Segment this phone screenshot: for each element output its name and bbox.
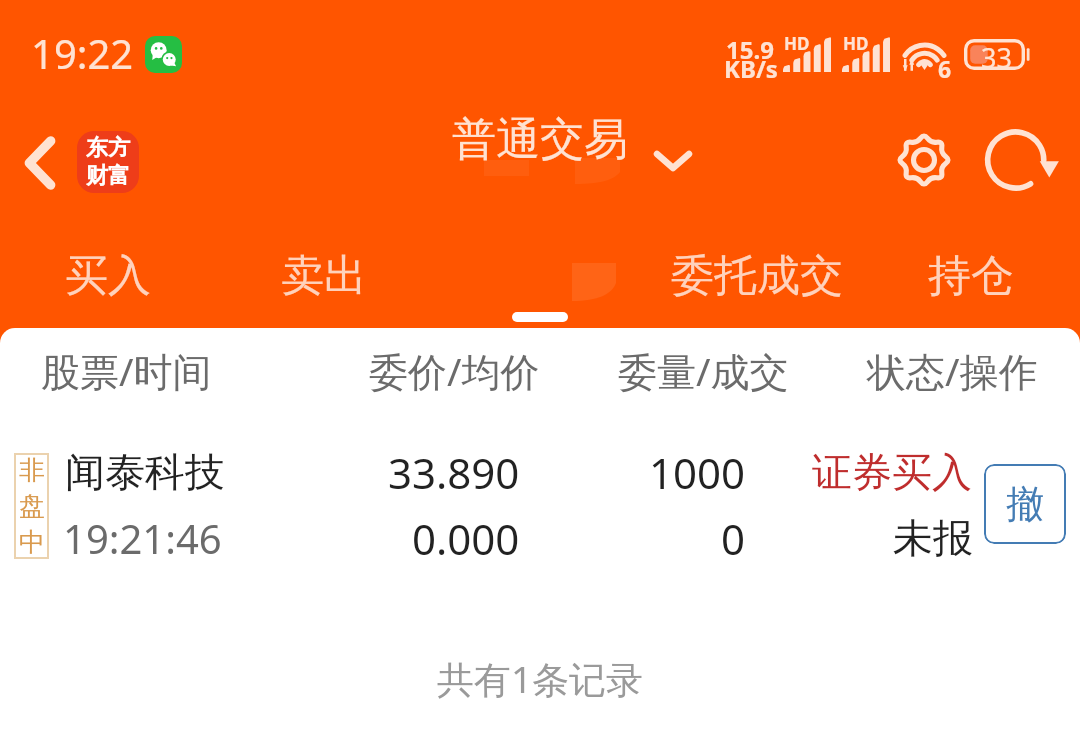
button[interactable]: Back <box>4 127 76 199</box>
staticText: 股票/时间 <box>41 344 212 397</box>
button[interactable]: 卖出 <box>264 238 384 314</box>
button[interactable]: 持仓 <box>911 238 1031 314</box>
staticText: 15.9 <box>726 33 774 66</box>
staticText: 闻泰科技 <box>65 447 225 497</box>
staticText: 33 <box>981 39 1012 70</box>
staticText: 委托成交 <box>671 249 843 303</box>
staticText: 19:22 <box>31 26 134 80</box>
button[interactable]: 委托成交 <box>653 238 861 314</box>
staticText: HD <box>843 32 869 55</box>
staticText: 卖出 <box>281 249 367 303</box>
staticText: 33.890 <box>388 444 520 501</box>
staticText: 委价/均价 <box>369 344 540 397</box>
staticText: 财富 <box>86 162 130 190</box>
button[interactable]: East Money <box>77 131 139 193</box>
button[interactable]: 非 <box>0 438 1080 578</box>
staticText: 19:21:46 <box>63 511 222 565</box>
staticText: 共有1条记录 <box>0 653 1080 704</box>
staticText: 买入 <box>65 249 151 303</box>
staticText: 撤 <box>1006 480 1044 528</box>
staticText: 中 <box>19 526 45 559</box>
staticText: 东方 <box>86 134 130 162</box>
staticText: 状态/操作 <box>867 344 1038 397</box>
staticText: 0 <box>721 510 746 567</box>
button[interactable]: Cancel order <box>984 464 1066 544</box>
staticText: 1000 <box>649 444 746 501</box>
button[interactable]: Switch account <box>643 131 703 191</box>
staticText: HD <box>784 32 810 55</box>
staticText: 委量/成交 <box>618 344 789 397</box>
staticText: KB/s <box>724 52 778 85</box>
staticText: 未报 <box>893 513 973 563</box>
staticText: 普通交易 <box>452 112 628 167</box>
staticText: 0.000 <box>412 510 520 567</box>
staticText: 盘 <box>19 490 45 523</box>
staticText: 6 <box>938 53 952 84</box>
staticText: 非 <box>19 454 45 487</box>
button[interactable]: Settings <box>884 120 964 200</box>
staticText: 持仓 <box>928 249 1014 303</box>
button[interactable]: 买入 <box>48 238 168 314</box>
button[interactable]: Refresh <box>980 120 1060 200</box>
button[interactable]: 普通交易 <box>415 110 665 168</box>
staticText: 证券买入 <box>812 447 972 497</box>
